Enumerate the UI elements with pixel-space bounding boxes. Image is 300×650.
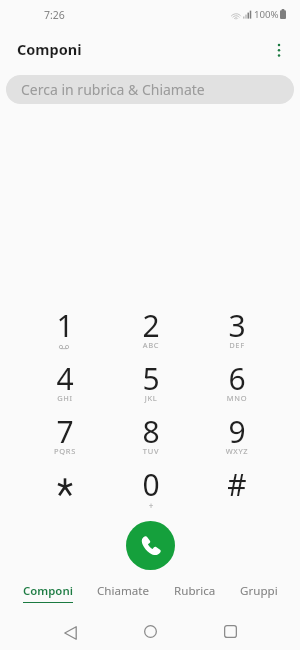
button[interactable]: # xyxy=(194,456,280,509)
button[interactable]: 3 xyxy=(194,297,280,350)
button[interactable]: Cerca in rubrica & Chiamate xyxy=(6,75,294,104)
button[interactable]: 9 xyxy=(194,403,280,456)
staticText: 100% xyxy=(254,8,279,21)
staticText: WXYZ xyxy=(194,446,280,456)
staticText: 7:26 xyxy=(44,8,65,22)
staticText: DEF xyxy=(194,340,280,350)
button[interactable]: Back xyxy=(45,612,95,650)
staticText: ABC xyxy=(108,340,194,350)
button[interactable]: 4 xyxy=(22,350,108,403)
button[interactable]: Componi xyxy=(11,583,85,607)
staticText: 3 xyxy=(194,305,280,346)
staticText: 6 xyxy=(194,358,280,399)
staticText: 7 xyxy=(22,411,108,452)
staticText: Cerca in rubrica & Chiamate xyxy=(21,80,205,99)
staticText: 9 xyxy=(194,411,280,452)
staticText: MNO xyxy=(194,393,280,403)
button[interactable]: 5 xyxy=(108,350,194,403)
button[interactable]: More options xyxy=(258,31,300,67)
button[interactable]: Recent apps xyxy=(205,612,255,650)
button[interactable] xyxy=(22,456,108,509)
staticText: PQRS xyxy=(22,446,108,456)
staticText: Componi xyxy=(17,39,82,59)
staticText: JKL xyxy=(108,393,194,403)
staticText: Rubrica xyxy=(174,583,216,599)
button[interactable]: 2 xyxy=(108,297,194,350)
button[interactable]: 0 xyxy=(108,456,194,509)
staticText: # xyxy=(194,464,280,505)
button[interactable]: Chiamate xyxy=(85,583,162,607)
staticText: Chiamate xyxy=(97,583,150,599)
staticText: 1 xyxy=(22,305,108,346)
button[interactable]: Call xyxy=(126,521,175,570)
staticText: 4 xyxy=(22,358,108,399)
staticText: 8 xyxy=(108,411,194,452)
button[interactable]: 7 xyxy=(22,403,108,456)
button[interactable]: 6 xyxy=(194,350,280,403)
staticText: + xyxy=(108,500,194,511)
button[interactable]: 8 xyxy=(108,403,194,456)
button[interactable]: Gruppi xyxy=(228,583,290,607)
staticText: 0 xyxy=(108,464,194,505)
staticText: Componi xyxy=(23,583,73,599)
staticText: GHI xyxy=(22,393,108,403)
button[interactable]: Rubrica xyxy=(162,583,228,607)
staticText: 5 xyxy=(108,358,194,399)
staticText: Gruppi xyxy=(240,583,278,599)
button[interactable]: Home xyxy=(125,612,175,650)
button[interactable]: 1 xyxy=(22,297,108,350)
staticText: TUV xyxy=(108,446,194,456)
staticText: 2 xyxy=(108,305,194,346)
